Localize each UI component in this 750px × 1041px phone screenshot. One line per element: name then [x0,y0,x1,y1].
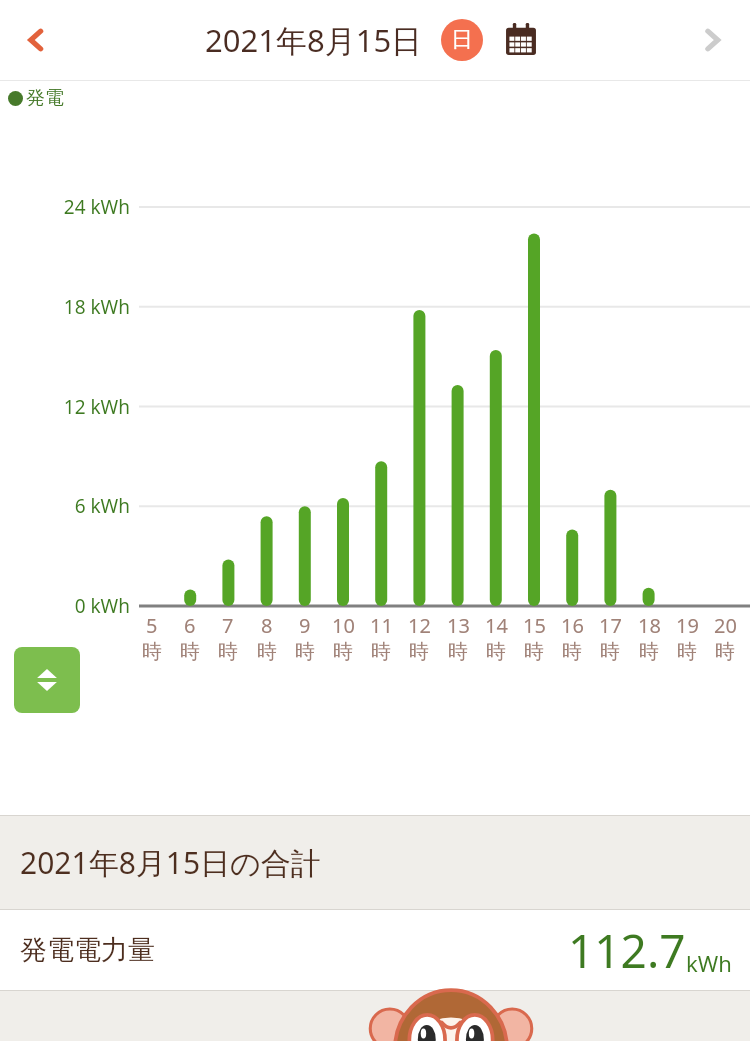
staticText: 時 [333,639,353,664]
staticText: 0 kWh [74,593,130,619]
staticText: 8 [261,612,273,639]
staticText: 18 kWh [63,294,130,320]
staticText: 7 [222,612,234,639]
staticText: 時 [486,639,506,664]
staticText: 時 [715,639,735,664]
staticText: 5 [146,612,158,639]
staticText: 日 [451,26,473,54]
button[interactable]: Previous day [8,12,64,68]
staticText: 時 [524,639,544,664]
staticText: 24 kWh [63,194,130,220]
staticText: 発電電力量 [20,933,155,967]
staticText: 時 [448,639,468,664]
button[interactable]: Next day [684,12,740,68]
staticText: 時 [371,639,391,664]
staticText: 112.7 [568,919,686,982]
staticText: 時 [409,639,429,664]
staticText: 13 [447,612,470,639]
staticText: 時 [639,639,659,664]
staticText: 時 [600,639,620,664]
button[interactable]: 日 [441,19,483,61]
staticText: 2021年8月15日の合計 [20,842,321,883]
button[interactable]: Change scale [14,647,80,713]
staticText: 18 [638,612,661,639]
staticText: 16 [561,612,584,639]
staticText: 12 [408,612,431,639]
staticText: 10 [332,612,355,639]
button[interactable]: Calendar [497,16,545,64]
staticText: 11 [370,612,393,639]
staticText: 20 [714,612,737,639]
staticText: 15 [523,612,546,639]
staticText: 時 [562,639,582,664]
staticText: 時 [218,639,238,664]
staticText: 12 kWh [63,394,130,420]
staticText: 時 [677,639,697,664]
staticText: 17 [599,612,622,639]
staticText: 時 [180,639,200,664]
button[interactable]: 発電電力量 [0,910,750,990]
staticText: 6 kWh [74,493,130,519]
staticText: kWh [686,948,732,978]
staticText: 時 [295,639,315,664]
staticText: 6 [184,612,196,639]
staticText: 2021年8月15日 [205,19,423,61]
staticText: 9 [299,612,311,639]
staticText: 19 [676,612,699,639]
staticText: 14 [485,612,508,639]
staticText: 発電 [26,86,64,110]
staticText: 時 [257,639,277,664]
staticText: 時 [142,639,162,664]
